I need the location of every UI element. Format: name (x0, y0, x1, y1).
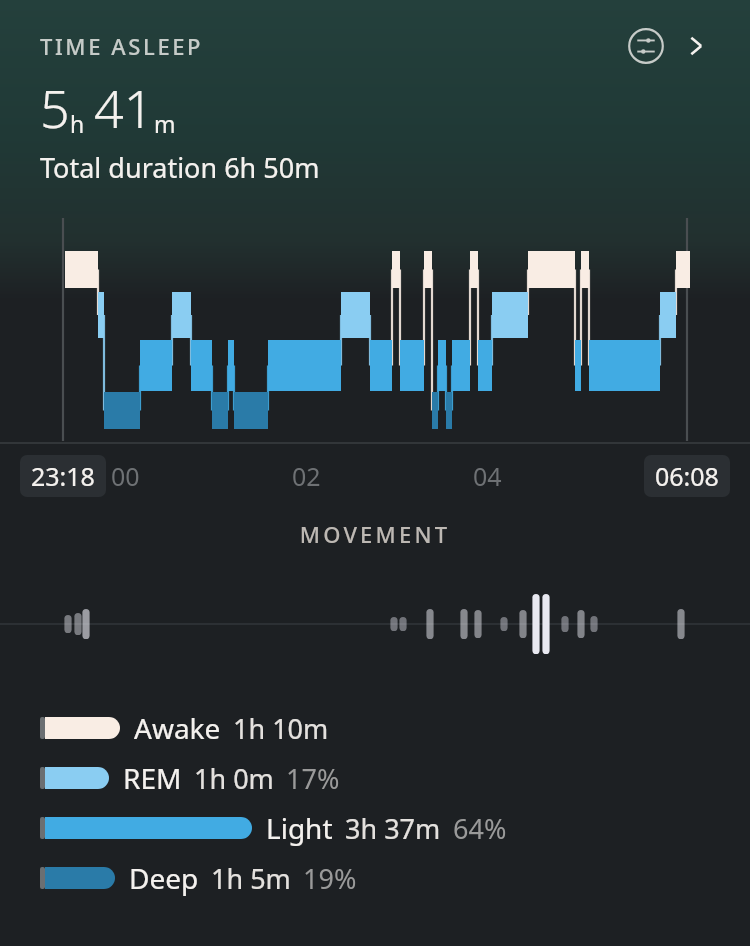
staticText: h (70, 108, 85, 139)
button[interactable]: Awake (0, 703, 750, 753)
staticText: 5 (40, 72, 70, 143)
staticText: 02 (292, 459, 321, 493)
staticText: Light (266, 809, 333, 847)
staticText: 19% (303, 860, 357, 897)
staticText: MOVEMENT (0, 519, 750, 549)
staticText: 00 (111, 459, 140, 493)
staticText: Awake (134, 709, 221, 747)
staticText: 04 (473, 459, 502, 493)
staticText: 3h 37m (345, 810, 441, 847)
staticText: 06:08 (655, 459, 719, 493)
staticText: 41 (94, 72, 154, 143)
button[interactable]: REM (0, 753, 750, 803)
staticText: 64% (453, 810, 507, 847)
staticText: 1h 10m (233, 710, 329, 747)
button[interactable]: Adjust sleep settings (624, 24, 668, 68)
button[interactable]: Light (0, 803, 750, 853)
staticText: 23:18 (31, 459, 95, 493)
staticText: m (154, 108, 176, 139)
staticText: TIME ASLEEP (40, 31, 204, 61)
staticText: 1h 5m (211, 860, 291, 897)
button[interactable]: More sleep details (674, 24, 718, 68)
staticText: REM (123, 759, 182, 797)
staticText: 17% (286, 760, 340, 797)
button[interactable]: Deep (0, 853, 750, 903)
staticText: Deep (129, 859, 199, 897)
staticText: 1h 0m (194, 760, 274, 797)
staticText: Total duration 6h 50m (40, 149, 320, 186)
